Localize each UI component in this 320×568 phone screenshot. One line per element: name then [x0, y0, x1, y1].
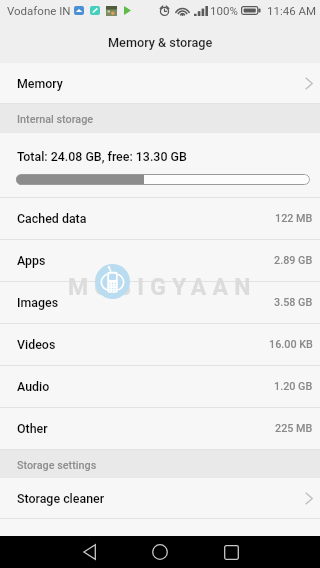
staticText: 225 MB	[275, 422, 313, 435]
staticText: Storage settings	[17, 459, 97, 472]
staticText: Audio	[17, 379, 50, 394]
staticText: 2.89 GB	[274, 254, 313, 267]
staticText: Images	[17, 295, 59, 310]
staticText: Storage cleaner	[17, 491, 105, 506]
button[interactable]: Audio	[0, 366, 320, 407]
staticText: Memory & storage	[108, 35, 213, 50]
staticText: 1.20 GB	[274, 380, 313, 393]
staticText: MOBIGYAAN	[68, 274, 257, 301]
staticText: Memory	[17, 76, 63, 91]
button[interactable]: Memory	[0, 63, 320, 103]
button[interactable]: Cached data	[0, 198, 320, 239]
staticText: 3.58 GB	[274, 296, 313, 309]
button[interactable]: Back	[69, 536, 109, 568]
staticText: Internal storage	[17, 113, 94, 126]
button[interactable]: Videos	[0, 324, 320, 365]
staticText: 11:46 AM	[267, 4, 317, 17]
button[interactable]: Other	[0, 408, 320, 449]
button[interactable]: Storage cleaner	[0, 478, 320, 518]
staticText: 100%	[210, 4, 238, 17]
button[interactable]: Home	[140, 536, 180, 568]
staticText: 122 MB	[275, 212, 313, 225]
staticText: Apps	[17, 253, 46, 268]
staticText: Videos	[17, 337, 56, 352]
staticText: Total: 24.08 GB, free: 13.30 GB	[17, 149, 187, 164]
staticText: Vodafone IN	[7, 4, 71, 17]
button[interactable]: Recents	[211, 536, 251, 568]
staticText: 16.00 KB	[269, 338, 313, 351]
button[interactable]: Apps	[0, 240, 320, 281]
button[interactable]: Images	[0, 282, 320, 323]
staticText: Other	[17, 421, 48, 436]
staticText: Cached data	[17, 211, 87, 226]
